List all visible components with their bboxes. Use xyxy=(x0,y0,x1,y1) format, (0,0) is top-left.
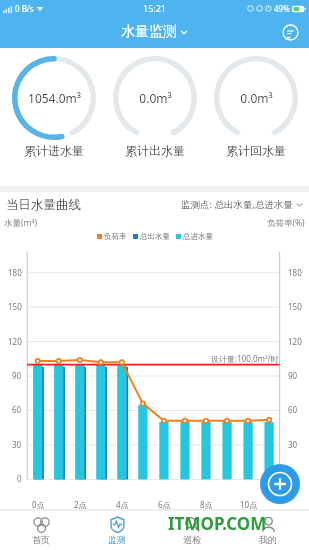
staticText: 0.0m³ xyxy=(139,90,172,106)
button[interactable]: 监测 xyxy=(82,510,152,550)
staticText: 负荷率(%) xyxy=(267,217,305,229)
staticText: 120 xyxy=(288,336,302,347)
staticText: 监测点: 总出水量,总进水量 xyxy=(181,198,294,211)
staticText: 15:21 xyxy=(143,2,167,14)
button[interactable]: 监测点: 总出水量,总进水量 xyxy=(181,198,303,211)
button[interactable]: 水量监测 xyxy=(121,23,188,41)
staticText: 0 xyxy=(17,473,22,484)
staticText: 累计回水量 xyxy=(226,143,286,158)
staticText: 总出水量 xyxy=(140,232,170,241)
staticText: 10点 xyxy=(240,499,258,510)
button[interactable]: 0.0m³ xyxy=(208,54,303,158)
staticText: 8点 xyxy=(200,499,213,510)
staticText: 30 xyxy=(288,439,298,450)
staticText: 90 xyxy=(288,370,298,381)
button[interactable]: 首页 xyxy=(6,510,76,550)
staticText: 4点 xyxy=(116,499,129,510)
staticText: 49% xyxy=(274,3,290,14)
staticText: 60 xyxy=(12,404,22,415)
staticText: 监测 xyxy=(108,534,126,545)
staticText: 180 xyxy=(8,267,22,278)
staticText: 180 xyxy=(288,267,302,278)
button[interactable]: Messages xyxy=(279,21,301,43)
staticText: 设计量:100.0m³/时 xyxy=(211,353,279,364)
button[interactable]: 1054.0m³ xyxy=(6,54,101,158)
staticText: 0 B/s xyxy=(15,3,34,14)
staticText: 6点 xyxy=(158,499,171,510)
staticText: 当日水量曲线 xyxy=(6,197,81,213)
staticText: 120 xyxy=(8,336,22,347)
button[interactable]: Add xyxy=(260,464,300,504)
staticText: 150 xyxy=(8,301,22,312)
staticText: ITMOP.COM xyxy=(168,512,267,535)
button[interactable]: 总出水量 xyxy=(133,232,170,241)
staticText: 150 xyxy=(288,301,302,312)
button[interactable]: 巡检 xyxy=(157,510,227,550)
button[interactable]: 总进水量 xyxy=(176,232,213,241)
staticText: 我的 xyxy=(259,534,277,545)
button[interactable]: 0.0m³ xyxy=(107,54,202,158)
staticText: 巡检 xyxy=(183,534,201,545)
staticText: 90 xyxy=(12,370,22,381)
staticText: 60 xyxy=(288,404,298,415)
staticText: 首页 xyxy=(32,534,50,545)
staticText: 总进水量 xyxy=(183,232,213,241)
staticText: 30 xyxy=(12,439,22,450)
staticText: 0 xyxy=(288,473,293,484)
staticText: 负荷率 xyxy=(104,232,127,241)
staticText: 2点 xyxy=(74,499,87,510)
button[interactable]: 负荷率 xyxy=(97,232,127,241)
staticText: 水量监测 xyxy=(121,23,177,41)
staticText: 1054.0m³ xyxy=(28,90,81,106)
staticText: 累计进水量 xyxy=(24,143,84,158)
staticText: 0点 xyxy=(32,499,45,510)
staticText: 水量(m³) xyxy=(4,217,38,229)
staticText: 累计出水量 xyxy=(125,143,185,158)
button[interactable]: 我的 xyxy=(233,510,303,550)
staticText: 0.0m³ xyxy=(240,90,273,106)
